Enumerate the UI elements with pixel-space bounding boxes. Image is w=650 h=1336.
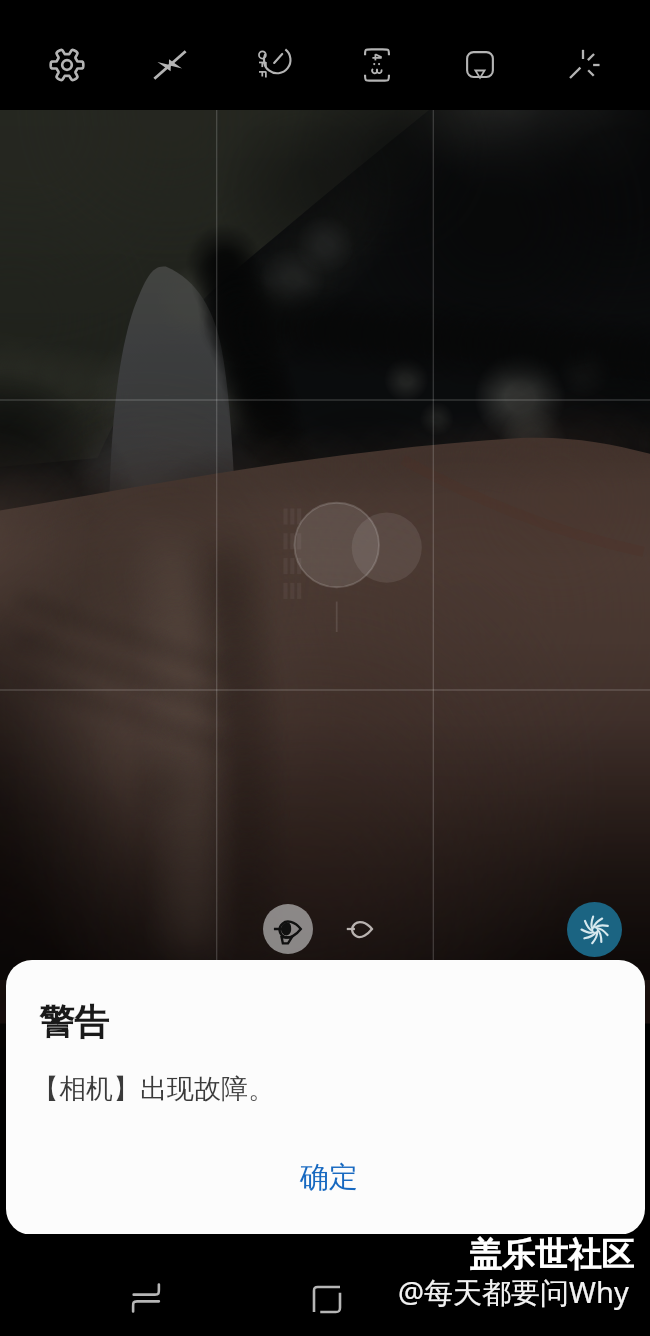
button[interactable]: Beauty effects <box>547 29 619 101</box>
button[interactable]: Timer off <box>237 29 309 101</box>
button[interactable]: Recent apps <box>118 1270 174 1326</box>
button[interactable]: Shutter <box>567 902 622 957</box>
button[interactable]: Filters <box>444 29 516 101</box>
button[interactable]: Lens mode <box>344 913 376 945</box>
button[interactable]: Home <box>299 1271 355 1327</box>
button[interactable]: Aspect ratio 4 to 3 <box>341 29 413 101</box>
staticText: 警告 <box>39 1000 109 1044</box>
button[interactable]: Settings <box>31 29 103 101</box>
staticText: @每天都要问Why <box>398 1272 629 1312</box>
staticText: 【相机】出现故障。 <box>32 1072 275 1106</box>
button[interactable]: Flash off <box>134 29 206 101</box>
staticText: 盖乐世社区 <box>469 1234 634 1276</box>
button[interactable]: 确定 <box>6 1138 645 1216</box>
button[interactable]: Switch camera <box>263 904 313 954</box>
staticText: 确定 <box>300 1159 358 1196</box>
